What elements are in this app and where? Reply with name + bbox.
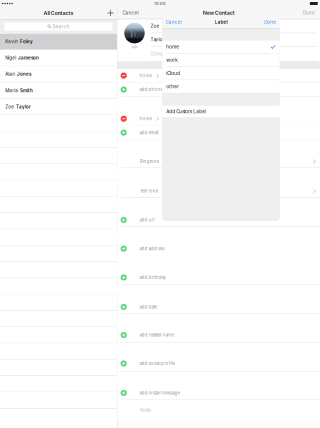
staticText: home (139, 73, 151, 78)
staticText: Taylor (150, 37, 164, 42)
staticText: add birthday (139, 275, 165, 280)
staticText: work (166, 57, 178, 63)
button[interactable]: add phone (117, 83, 320, 97)
staticText: Kevin (5, 39, 18, 44)
button[interactable]: add address (117, 227, 320, 256)
staticText: Notes (140, 408, 151, 413)
button[interactable]: Cancel (162, 15, 182, 29)
button[interactable]: Ringtone (117, 140, 320, 168)
button[interactable]: Search (4, 23, 112, 31)
staticText: Jameson (18, 55, 39, 61)
staticText: add phone (139, 87, 162, 92)
button[interactable]: add email (117, 125, 320, 140)
staticText: All Contacts (43, 10, 73, 16)
button[interactable]: Nigel (0, 50, 117, 66)
staticText: add email (139, 130, 158, 135)
staticText: edit (131, 45, 137, 49)
staticText: Taylor (16, 104, 31, 110)
staticText: Cancel (166, 19, 182, 25)
staticText: Jones (17, 71, 31, 77)
staticText: Label (214, 19, 227, 25)
button[interactable]: Done (264, 15, 280, 29)
staticText: home (139, 116, 151, 121)
staticText: add related name (139, 332, 173, 338)
staticText: Done (303, 10, 315, 16)
staticText: Foley (20, 39, 33, 44)
staticText: Add Custom Label (166, 109, 206, 114)
button[interactable]: add instant message (117, 372, 320, 400)
staticText: 10:00 (154, 1, 166, 6)
staticText: add instant message (139, 390, 179, 396)
button[interactable]: other (162, 80, 280, 93)
staticText: Ringtone (140, 159, 159, 164)
staticText: Zoe (5, 104, 14, 110)
staticText: Company (150, 51, 172, 57)
staticText: add url (139, 217, 154, 223)
button[interactable]: add related name (117, 314, 320, 343)
staticText: iCloud (166, 70, 180, 76)
button[interactable]: Zoe (0, 99, 117, 115)
staticText: add date (139, 304, 156, 310)
button[interactable]: Add Custom Label (162, 106, 280, 118)
staticText: add social profile (139, 361, 174, 366)
button[interactable]: Done (303, 7, 320, 19)
button[interactable]: add date (117, 285, 320, 314)
button[interactable]: home (117, 97, 320, 125)
staticText: Zoe (150, 23, 159, 29)
staticText: Text Tone (140, 188, 158, 194)
button[interactable]: add birthday (117, 256, 320, 285)
button[interactable]: Cancel (117, 7, 138, 19)
button[interactable]: iCloud (162, 67, 280, 80)
staticText: Alan (5, 71, 15, 77)
staticText: Done (264, 19, 276, 25)
staticText: add address (139, 246, 164, 251)
button[interactable]: home (162, 40, 280, 54)
button[interactable]: add social profile (117, 343, 320, 372)
staticText: Smith (20, 88, 33, 93)
button[interactable]: Kevin (0, 34, 117, 50)
button[interactable]: add url (117, 198, 320, 227)
button[interactable]: Alan (0, 66, 117, 83)
staticText: home (166, 44, 179, 50)
button[interactable]: Text Tone (117, 168, 320, 198)
staticText: Maria (5, 88, 18, 93)
staticText: Cancel (122, 10, 138, 16)
staticText: Nigel (5, 55, 16, 61)
staticText: other (166, 84, 179, 89)
staticText: New Contact (203, 10, 235, 16)
staticText: Search (53, 24, 70, 29)
button[interactable]: Maria (0, 83, 117, 99)
button[interactable]: Add contact (104, 7, 117, 19)
button[interactable]: home (117, 69, 320, 83)
button[interactable]: work (162, 54, 280, 67)
